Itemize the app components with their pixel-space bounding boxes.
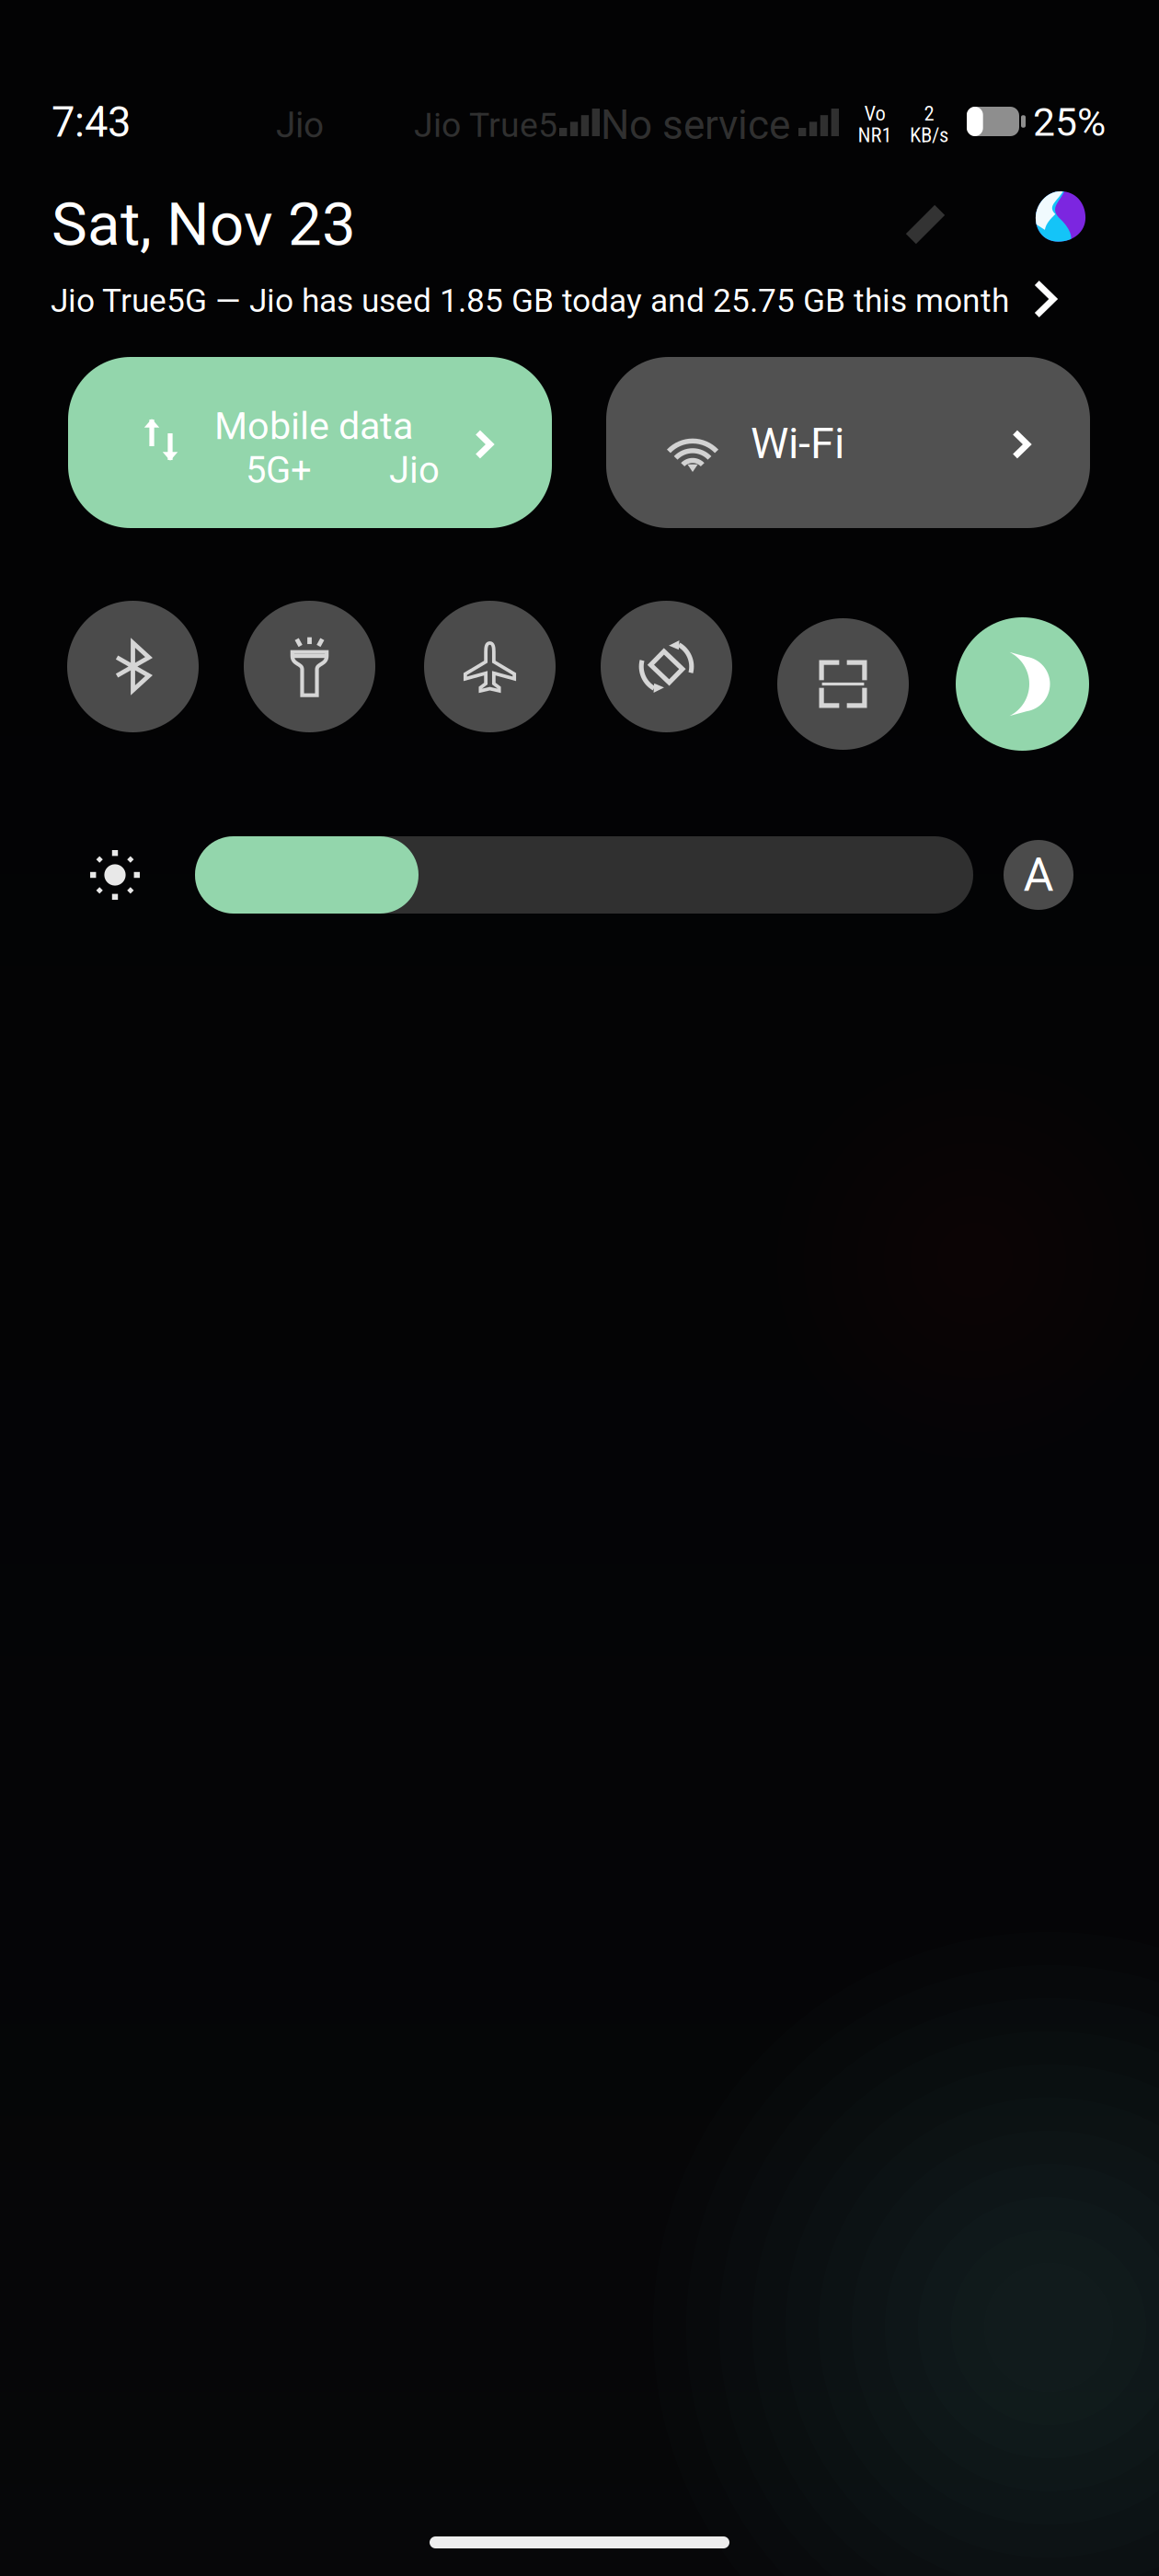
button[interactable]: Scan QR code bbox=[777, 618, 909, 750]
staticText: Jio True5 bbox=[414, 105, 557, 145]
staticText: Jio True5G — Jio has used 1.85 GB today … bbox=[51, 282, 1009, 320]
button[interactable]: Wi-Fi bbox=[606, 357, 1090, 528]
button[interactable]: Mobile data bbox=[68, 357, 552, 528]
staticText: 25% bbox=[1033, 99, 1106, 145]
staticText: NR1 bbox=[858, 123, 892, 147]
button[interactable]: Automatic brightness bbox=[1004, 840, 1073, 910]
staticText: Jio bbox=[276, 104, 324, 146]
button[interactable]: Jio True5G — Jio has used 1.85 GB today … bbox=[51, 276, 1108, 326]
staticText: A bbox=[1023, 848, 1054, 902]
staticText: Sat, Nov 23 bbox=[52, 189, 356, 260]
staticText: 7:43 bbox=[52, 98, 131, 147]
staticText: KB/s bbox=[910, 123, 948, 147]
staticText: 2 bbox=[924, 101, 934, 126]
button[interactable]: Flashlight bbox=[244, 601, 375, 732]
staticText: No service bbox=[601, 101, 790, 149]
button[interactable]: Bluetooth bbox=[67, 601, 199, 732]
staticText: Jio bbox=[389, 449, 440, 492]
button[interactable]: Edit quick settings bbox=[890, 190, 960, 259]
button[interactable]: Dark mode bbox=[956, 617, 1089, 751]
button[interactable]: Auto rotate bbox=[601, 601, 732, 732]
staticText: Wi-Fi bbox=[751, 418, 844, 469]
button[interactable]: Airplane mode bbox=[424, 601, 556, 732]
button[interactable]: Assistant bbox=[1033, 189, 1088, 244]
staticText: Mobile data bbox=[214, 404, 413, 448]
staticText: Vo bbox=[864, 101, 885, 126]
button[interactable]: Brightness bbox=[195, 836, 973, 914]
staticText: 5G+ bbox=[246, 449, 312, 492]
